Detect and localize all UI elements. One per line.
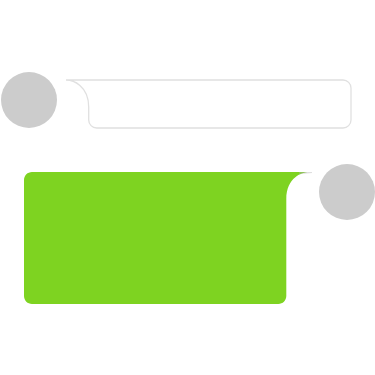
- button[interactable]: My avatar: [319, 164, 375, 220]
- button[interactable]: Received message: [66, 80, 351, 128]
- button[interactable]: Sent message: [24, 172, 309, 304]
- button[interactable]: Contact avatar: [1, 72, 57, 128]
